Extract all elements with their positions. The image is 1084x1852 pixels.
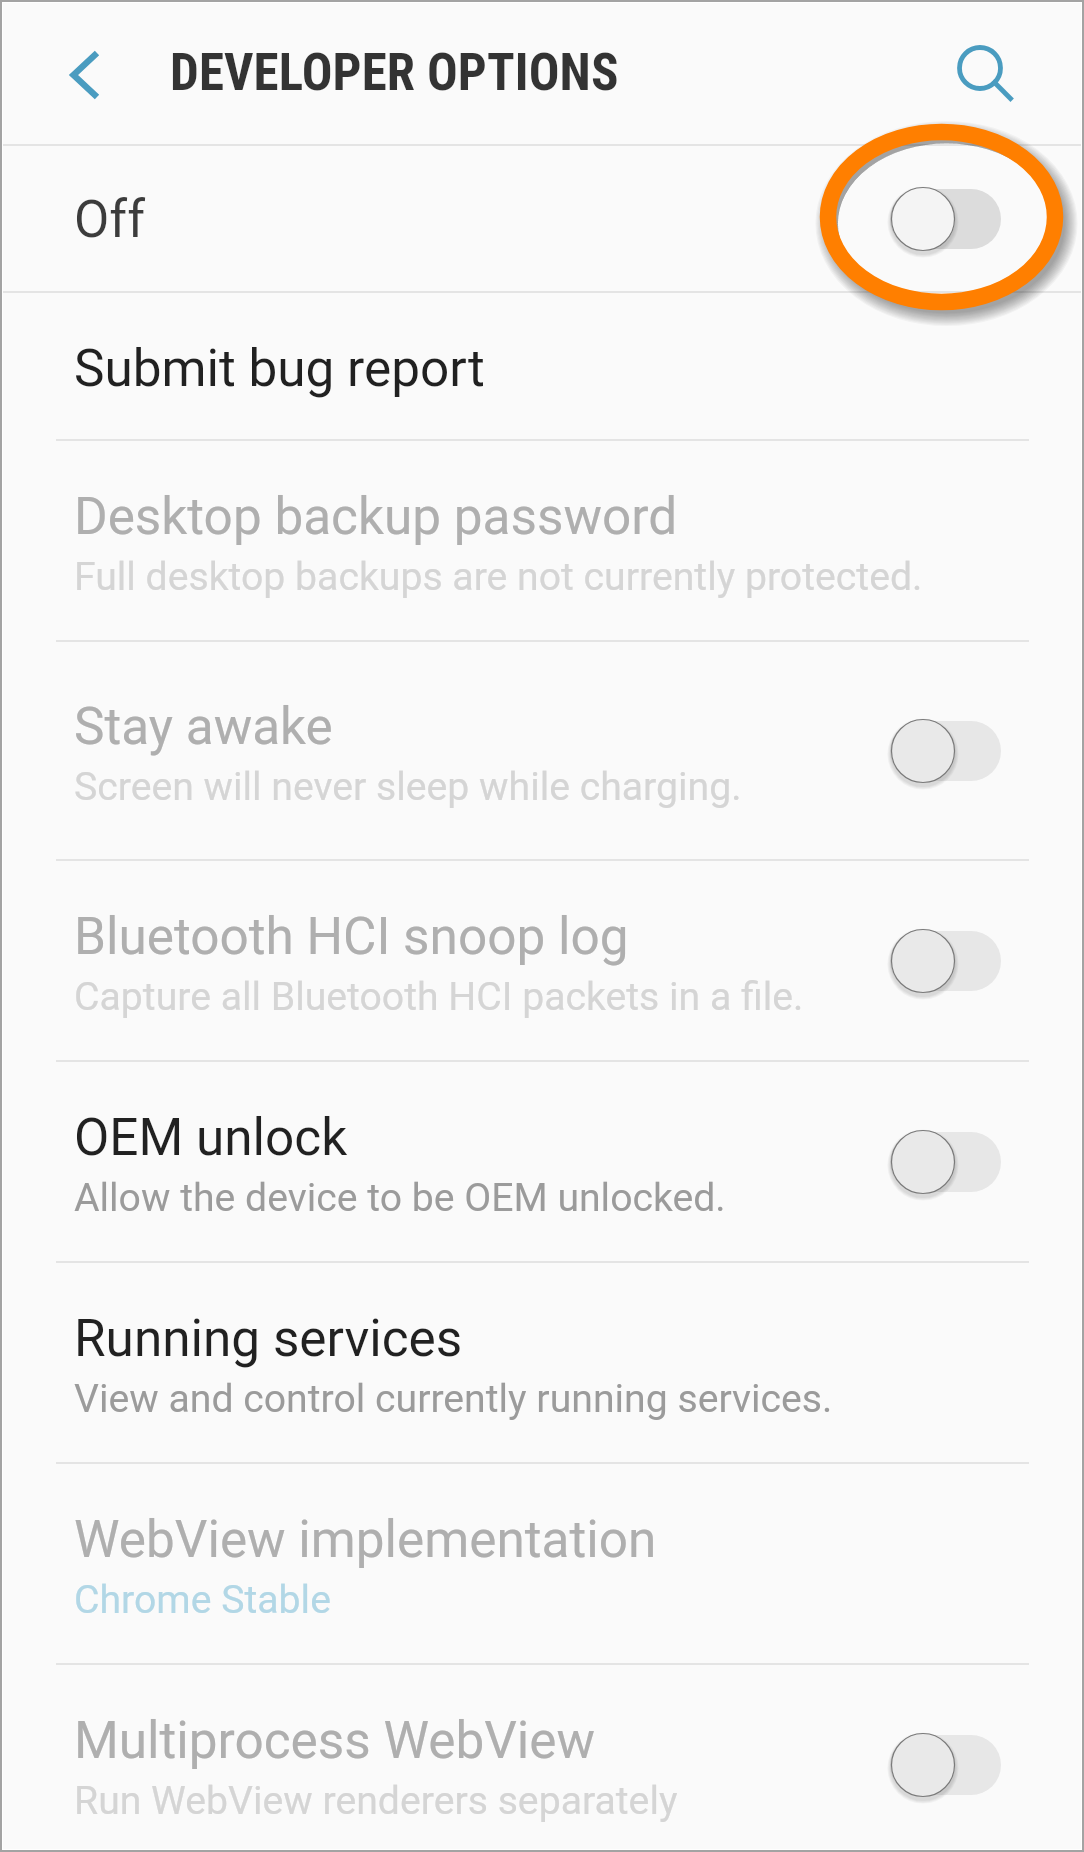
button[interactable]: OEM unlock, off	[890, 1129, 1003, 1195]
button[interactable]: Stay awake, off	[890, 718, 1003, 784]
staticText: Bluetooth HCI snoop log	[74, 906, 629, 966]
staticText: Full desktop backups are not currently p…	[74, 554, 923, 600]
staticText: Stay awake	[74, 696, 333, 756]
button[interactable]: Multiprocess WebView, off	[890, 1732, 1003, 1798]
staticText: View and control currently running servi…	[74, 1376, 833, 1422]
staticText: Chrome Stable	[74, 1577, 331, 1623]
staticText: Allow the device to be OEM unlocked.	[74, 1175, 726, 1221]
button[interactable]: Multiprocess WebView	[3, 1665, 1081, 1852]
button[interactable]: OEM unlock	[3, 1062, 1081, 1261]
staticText: Run WebView renderers separately	[74, 1778, 678, 1824]
button[interactable]: Off	[3, 146, 1081, 291]
button[interactable]: Bluetooth HCI snoop log	[3, 861, 1081, 1060]
staticText: Capture all Bluetooth HCI packets in a f…	[74, 974, 804, 1020]
staticText: Off	[74, 189, 145, 249]
button[interactable]: Submit bug report	[3, 293, 1081, 439]
staticText: Submit bug report	[74, 338, 485, 398]
button[interactable]: Back	[31, 18, 143, 130]
button[interactable]: Desktop backup password	[3, 441, 1081, 640]
staticText: DEVELOPER OPTIONS	[170, 43, 619, 103]
staticText: Screen will never sleep while charging.	[74, 764, 742, 810]
button[interactable]: Bluetooth HCI snoop log, off	[890, 928, 1003, 994]
staticText: WebView implementation	[74, 1509, 657, 1569]
staticText: OEM unlock	[74, 1107, 348, 1167]
button[interactable]: Developer options, off	[890, 186, 1003, 252]
staticText: Multiprocess WebView	[74, 1710, 596, 1770]
button[interactable]: WebView implementation	[3, 1464, 1081, 1663]
button[interactable]: Stay awake	[3, 642, 1081, 859]
button[interactable]: Running services	[3, 1263, 1081, 1462]
staticText: Desktop backup password	[74, 486, 678, 546]
staticText: Running services	[74, 1308, 463, 1368]
button[interactable]: Search	[924, 18, 1036, 130]
